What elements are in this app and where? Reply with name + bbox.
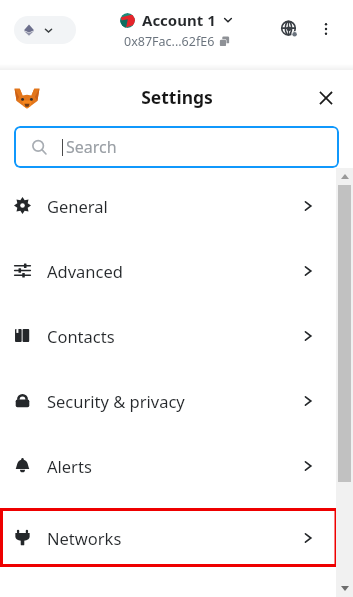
button[interactable]: Connected sites bbox=[275, 15, 303, 43]
staticText: Search bbox=[66, 136, 117, 158]
staticText: Settings bbox=[141, 85, 213, 109]
staticText: 0x87Fac...62fE6 bbox=[124, 33, 215, 50]
staticText: Advanced bbox=[47, 260, 123, 282]
staticText: Contacts bbox=[47, 325, 115, 347]
button[interactable]: Account 1 bbox=[120, 10, 234, 50]
staticText: Networks bbox=[47, 527, 122, 549]
button[interactable]: Advanced bbox=[0, 246, 336, 295]
button[interactable]: More options bbox=[312, 15, 340, 43]
button[interactable]: General bbox=[0, 181, 336, 230]
button[interactable]: Alerts bbox=[0, 441, 336, 490]
button[interactable]: Search bbox=[14, 126, 339, 168]
staticText: Security & privacy bbox=[47, 390, 185, 412]
staticText: Account 1 bbox=[142, 10, 216, 30]
button[interactable]: Close bbox=[313, 85, 339, 111]
staticText: Alerts bbox=[47, 455, 92, 477]
button[interactable]: Security & privacy bbox=[0, 376, 336, 425]
button[interactable]: Contacts bbox=[0, 311, 336, 360]
staticText: General bbox=[47, 195, 108, 217]
button[interactable]: Select network bbox=[14, 16, 76, 44]
button[interactable]: Networks bbox=[0, 508, 336, 567]
